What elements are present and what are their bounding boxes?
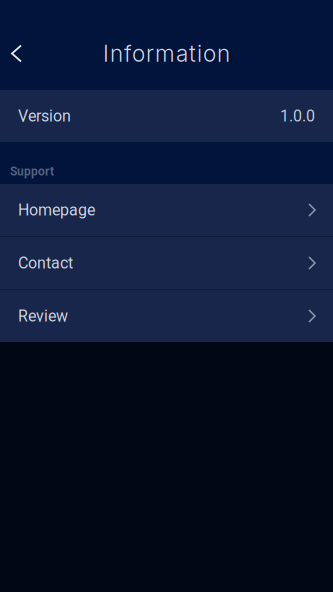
button[interactable]: Back — [0, 31, 33, 75]
staticText: Version — [18, 107, 71, 125]
button[interactable]: Homepage — [0, 184, 333, 236]
staticText: Homepage — [18, 201, 95, 219]
staticText: Review — [18, 307, 68, 325]
staticText: Contact — [18, 254, 73, 272]
button[interactable]: Review — [0, 290, 333, 342]
staticText: Support — [10, 164, 54, 179]
staticText: Information — [103, 40, 230, 67]
staticText: 1.0.0 — [280, 107, 315, 125]
button[interactable]: Contact — [0, 237, 333, 289]
